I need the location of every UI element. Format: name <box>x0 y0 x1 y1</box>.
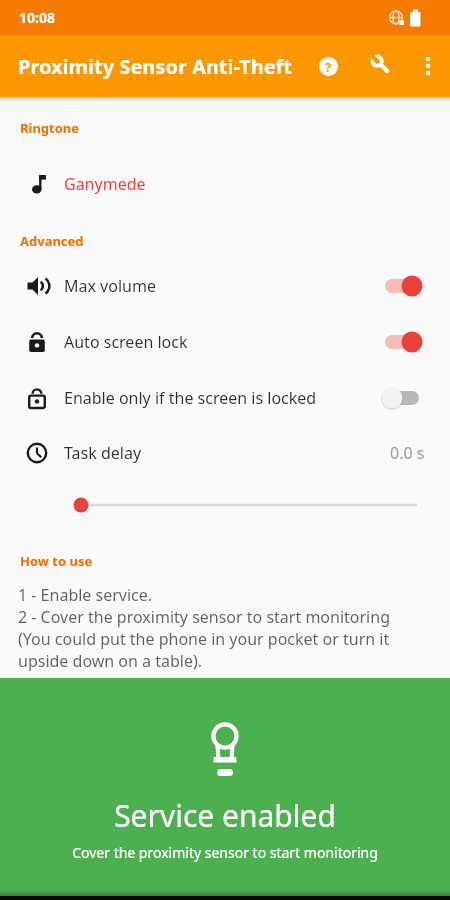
staticText: 1 - Enable service. 2 - Cover the proxim… <box>18 584 390 672</box>
button[interactable]: ? <box>308 46 348 86</box>
button[interactable]: Service enabled <box>0 678 450 896</box>
staticText: ? <box>325 58 332 76</box>
button[interactable]: Max volume <box>0 260 450 312</box>
staticText: Ganymede <box>64 173 146 195</box>
button[interactable]: Task delay <box>0 428 450 478</box>
staticText: 0.0 s <box>390 442 425 464</box>
staticText: Enable only if the screen is locked <box>64 387 317 409</box>
staticText: Service enabled <box>0 795 450 836</box>
staticText: Cover the proximity sensor to start moni… <box>0 843 450 862</box>
button[interactable]: Auto screen lock <box>0 316 450 368</box>
staticText: Task delay <box>64 442 142 464</box>
staticText: Advanced <box>20 232 84 250</box>
button[interactable] <box>362 46 402 86</box>
button[interactable]: Ganymede <box>0 158 450 210</box>
staticText: Max volume <box>64 275 156 297</box>
staticText: Proximity Sensor Anti-Theft <box>18 53 293 80</box>
button[interactable]: Enable only if the screen is locked <box>0 372 450 424</box>
button[interactable] <box>0 490 450 520</box>
button[interactable] <box>410 48 446 84</box>
staticText: How to use <box>20 552 93 570</box>
staticText: Auto screen lock <box>64 331 188 353</box>
staticText: Ringtone <box>20 119 80 137</box>
staticText: 10:08 <box>19 8 55 27</box>
